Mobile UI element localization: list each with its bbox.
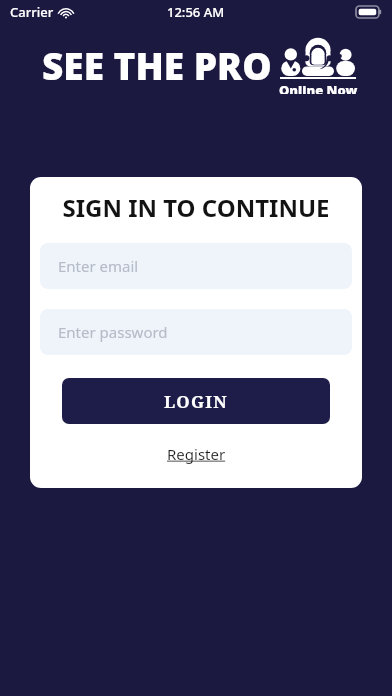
button[interactable]: Enter password: [40, 309, 352, 355]
staticText: Enter password: [58, 322, 168, 342]
button[interactable]: Register: [159, 442, 234, 466]
other: Support agents online: [278, 36, 358, 76]
button[interactable]: Enter email: [40, 243, 352, 289]
staticText: LOGIN: [164, 390, 228, 413]
staticText: SEE THE PRO: [42, 40, 272, 90]
staticText: Carrier: [10, 3, 54, 21]
staticText: SIGN IN TO CONTINUE: [62, 191, 330, 224]
staticText: Online Now: [279, 81, 358, 94]
staticText: Register: [167, 444, 226, 464]
staticText: 12:56 AM: [167, 3, 225, 21]
staticText: Enter email: [58, 256, 139, 276]
button[interactable]: LOGIN: [62, 378, 330, 424]
